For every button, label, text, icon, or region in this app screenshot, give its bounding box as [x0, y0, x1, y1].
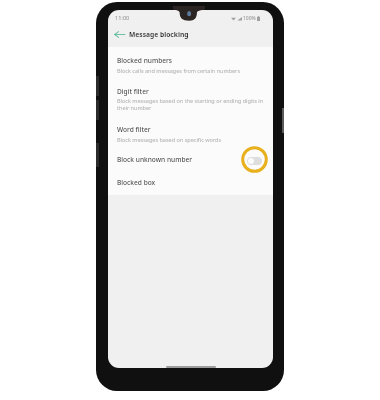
staticText: Blocked box	[117, 178, 156, 187]
staticText: Block messages based on the starting or …	[117, 97, 267, 111]
staticText: 11:00	[115, 14, 130, 22]
button[interactable]: Block unknown number	[108, 149, 273, 168]
button[interactable]: Block unknown number switch	[241, 146, 268, 173]
staticText: Word filter	[117, 125, 151, 134]
staticText: Digit filter	[117, 87, 149, 96]
staticText: Block messages based on specific words	[117, 136, 267, 143]
staticText: Block calls and messages from certain nu…	[117, 67, 267, 74]
staticText: 100%	[243, 15, 256, 22]
staticText: Message blocking	[129, 30, 189, 39]
button[interactable]: Navigate up	[109, 24, 129, 44]
staticText: Blocked numbers	[117, 56, 173, 65]
button[interactable]: Blocked box	[108, 172, 273, 191]
staticText: Block unknown number	[117, 155, 193, 164]
